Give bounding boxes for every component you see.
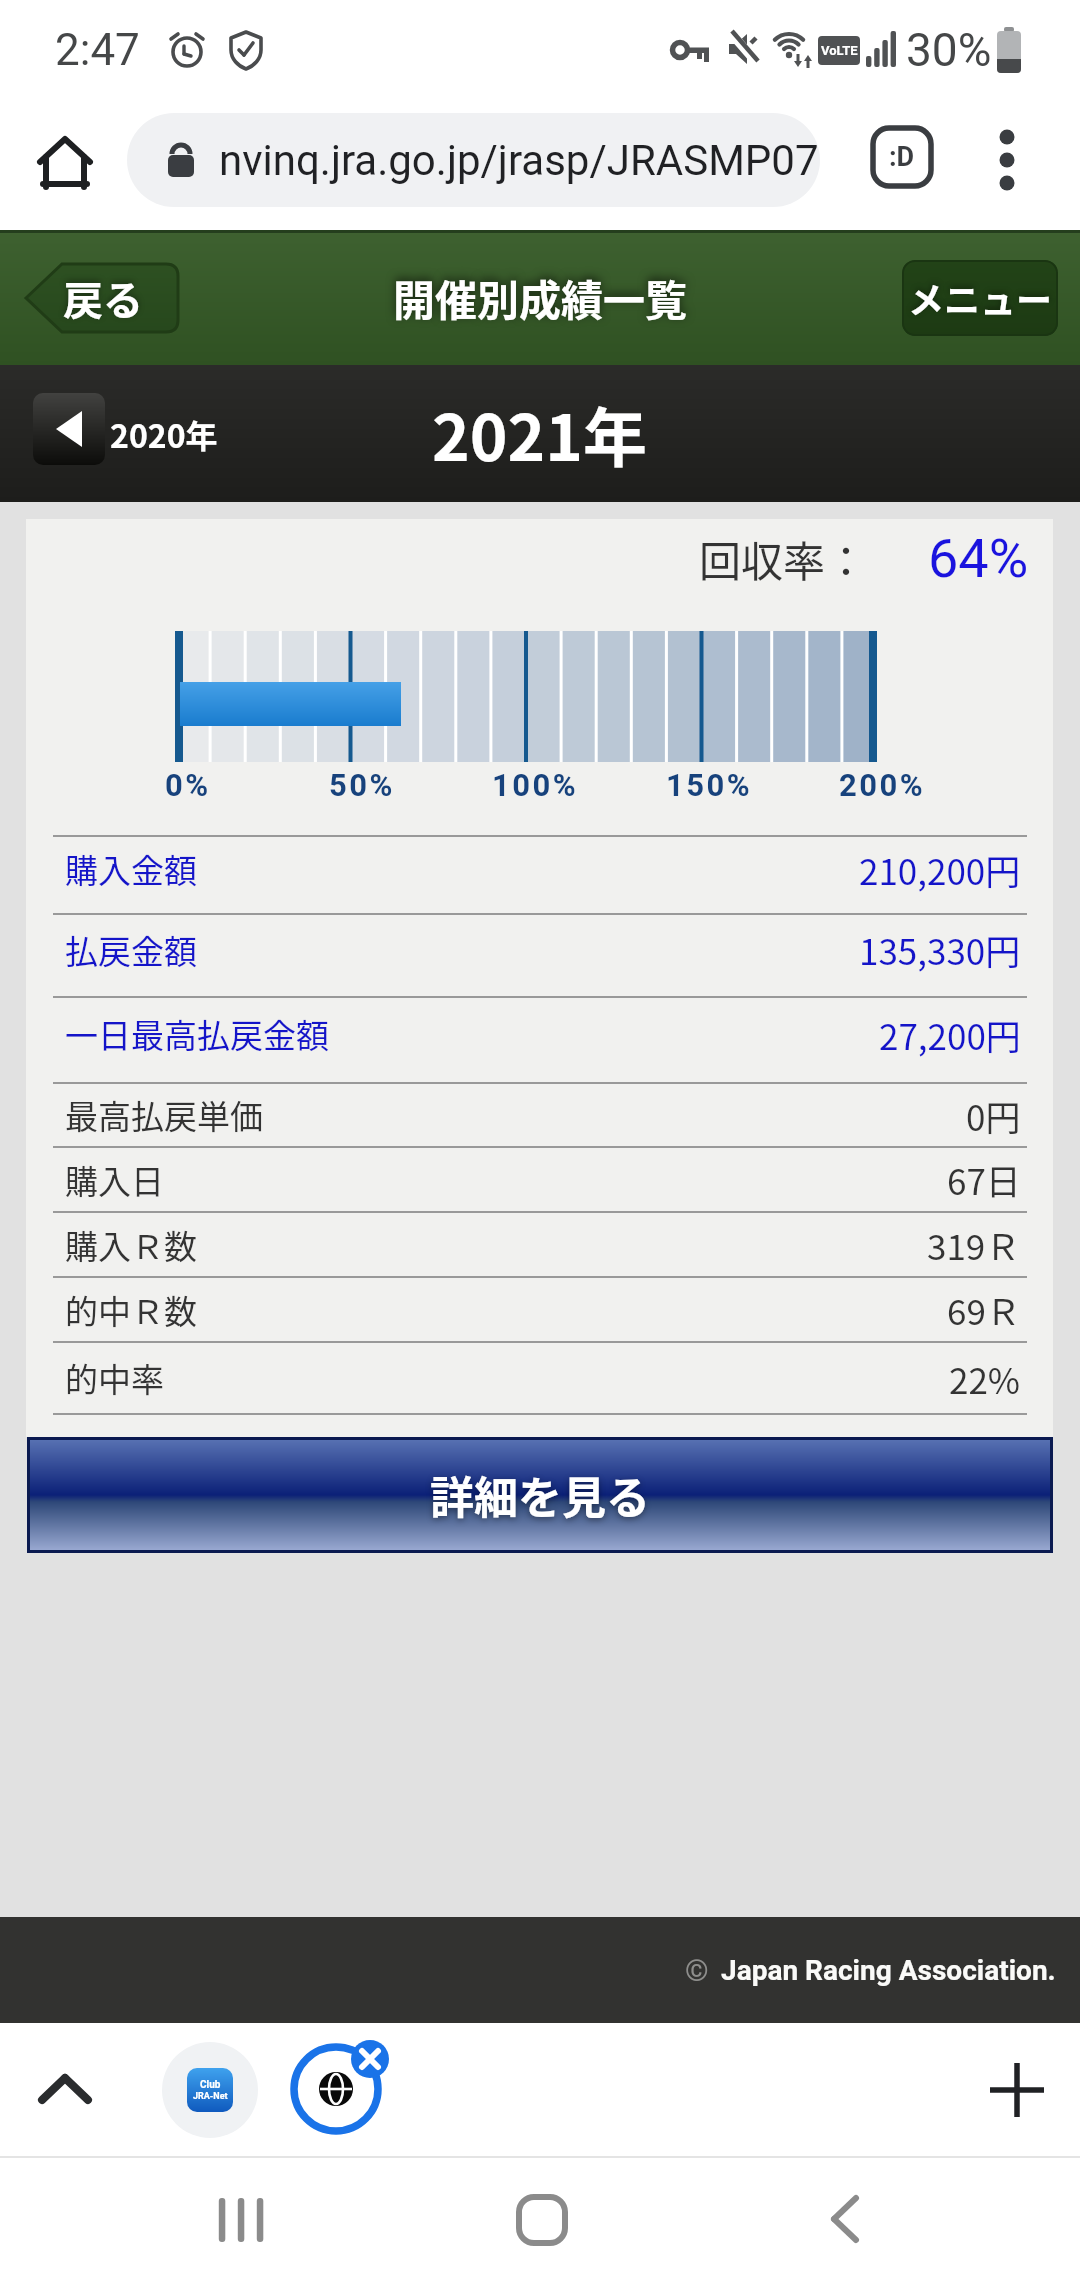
staticText: 100% xyxy=(492,767,579,803)
button[interactable]: 最高払戻単価 xyxy=(53,1084,1027,1146)
staticText: 回収率： xyxy=(699,528,868,589)
button[interactable]: :D xyxy=(870,125,934,189)
button[interactable] xyxy=(290,2043,382,2135)
staticText: 2:47 xyxy=(55,24,140,76)
staticText: 的中率 xyxy=(65,1354,164,1402)
button[interactable] xyxy=(985,125,1029,195)
button[interactable]: メニュー xyxy=(902,260,1058,336)
button[interactable] xyxy=(810,2188,880,2252)
button[interactable] xyxy=(977,2050,1057,2130)
staticText: 購入日 xyxy=(65,1156,164,1204)
staticText: VoLTE xyxy=(821,43,858,58)
staticText: 詳細を見る xyxy=(430,1463,650,1527)
staticText: 135,330円 xyxy=(859,924,1021,975)
button[interactable]: 詳細を見る xyxy=(27,1437,1053,1553)
button[interactable] xyxy=(25,2050,105,2130)
staticText: JRA-Net xyxy=(193,2091,228,2102)
staticText: Japan Racing Association. xyxy=(721,1954,1056,1987)
button[interactable]: 購入日 xyxy=(53,1148,1027,1211)
staticText: © xyxy=(685,1953,709,1988)
staticText: 0円 xyxy=(966,1090,1021,1141)
staticText: Club xyxy=(200,2079,221,2091)
staticText: 64% xyxy=(928,527,1029,590)
staticText: 200% xyxy=(839,767,926,803)
button[interactable]: 的中Ｒ数 xyxy=(53,1278,1027,1341)
button[interactable]: 的中率 xyxy=(53,1343,1027,1413)
button[interactable]: 購入Ｒ数 xyxy=(53,1213,1027,1276)
staticText: 0% xyxy=(165,767,211,803)
staticText: 購入金額 xyxy=(65,845,197,893)
staticText: 購入Ｒ数 xyxy=(65,1221,197,1269)
staticText: 69Ｒ xyxy=(947,1284,1021,1335)
button[interactable] xyxy=(30,128,100,198)
button[interactable] xyxy=(33,393,105,465)
staticText: メニュー xyxy=(908,272,1053,324)
staticText: 戻る xyxy=(63,269,143,327)
staticText: 2021年 xyxy=(432,387,648,480)
staticText: 319Ｒ xyxy=(927,1219,1021,1270)
staticText: 30% xyxy=(906,23,992,77)
staticText: nvinq.jra.go.jp/jrasp/JRASMP07 xyxy=(219,136,819,185)
button[interactable]: 一日最高払戻金額 xyxy=(53,998,1027,1082)
staticText: 50% xyxy=(329,767,395,803)
button[interactable]: 戻る xyxy=(22,258,184,338)
staticText: 210,200円 xyxy=(859,844,1021,895)
button[interactable]: 購入金額 xyxy=(53,837,1027,913)
button[interactable]: Club xyxy=(162,2042,258,2138)
button[interactable] xyxy=(508,2188,576,2252)
button[interactable] xyxy=(198,2188,282,2252)
staticText: 開催別成績一覧 xyxy=(393,267,688,328)
staticText: :D xyxy=(889,141,915,173)
staticText: 最高払戻単価 xyxy=(65,1091,263,1139)
button[interactable]: nvinq.jra.go.jp/jrasp/JRASMP07 xyxy=(127,113,820,207)
button[interactable]: 払戻金額 xyxy=(53,915,1027,996)
staticText: 67日 xyxy=(947,1154,1021,1205)
staticText: 2020年 xyxy=(110,411,218,457)
staticText: 払戻金額 xyxy=(65,926,197,974)
staticText: 22% xyxy=(949,1353,1021,1404)
staticText: 的中Ｒ数 xyxy=(65,1286,197,1334)
staticText: 一日最高払戻金額 xyxy=(65,1010,329,1058)
staticText: 27,200円 xyxy=(879,1009,1021,1060)
staticText: 150% xyxy=(666,767,753,803)
